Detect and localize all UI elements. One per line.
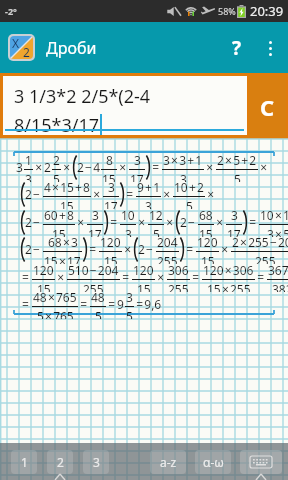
staticText: 58%: [218, 5, 236, 17]
staticText: ×: [156, 269, 166, 285]
button[interactable]: More options: [255, 26, 285, 70]
staticText: 68 × 3: [48, 234, 78, 250]
staticText: 48: [91, 289, 105, 305]
staticText: 4 × 15 + 8: [44, 179, 90, 195]
staticText: 17: [104, 198, 118, 209]
staticText: 5: [53, 171, 60, 182]
staticText: 15 × 17: [44, 253, 81, 264]
staticText: =: [256, 269, 266, 285]
staticText: Дроби: [46, 37, 97, 59]
staticText: 2 −: [25, 186, 42, 202]
staticText: 10 × 12: [260, 207, 288, 223]
staticText: 15: [201, 253, 215, 264]
button[interactable]: C: [249, 76, 286, 137]
staticText: 3: [180, 171, 187, 182]
staticText: 3825: [272, 281, 288, 292]
button[interactable]: 2: [47, 450, 73, 474]
staticText: ×: [137, 214, 147, 230]
staticText: 12: [149, 207, 163, 223]
staticText: 2: [23, 44, 30, 59]
staticText: 120: [33, 262, 54, 278]
button[interactable]: Keyboard: [240, 450, 282, 474]
staticText: 3 × 3 + 1: [163, 152, 203, 168]
staticText: 3: [126, 289, 133, 305]
staticText: 68: [199, 207, 213, 223]
staticText: 255: [255, 253, 276, 264]
staticText: 10: [121, 207, 135, 223]
staticText: ×: [118, 159, 128, 175]
staticText: 120: [133, 262, 154, 278]
staticText: 17: [227, 226, 241, 237]
staticText: 5: [126, 308, 133, 319]
staticText: 2: [44, 159, 51, 175]
staticText: 3: [231, 207, 238, 223]
staticText: 3: [108, 179, 115, 195]
staticText: 5: [153, 226, 160, 237]
staticText: 3 × 5: [267, 226, 288, 237]
staticText: 5 × 765: [37, 308, 74, 319]
staticText: 5: [186, 198, 193, 209]
staticText: 48 × 765: [33, 289, 77, 305]
staticText: =: [22, 269, 31, 285]
staticText: ×: [259, 159, 269, 175]
staticText: -2°: [5, 5, 17, 17]
staticText: 15: [104, 253, 118, 264]
staticText: =: [22, 296, 31, 312]
staticText: ×: [92, 186, 102, 202]
staticText: 2 −: [25, 241, 42, 257]
staticText: ×: [76, 214, 86, 230]
staticText: =: [191, 269, 201, 285]
staticText: =: [109, 214, 119, 230]
staticText: =: [151, 159, 161, 175]
staticText: 120: [100, 234, 121, 250]
staticText: =: [88, 241, 98, 257]
button[interactable]: Help: [219, 26, 255, 70]
staticText: =: [185, 241, 195, 257]
staticText: 3: [93, 454, 100, 470]
staticText: 9 + 1: [137, 179, 160, 195]
staticText: 5: [234, 171, 241, 182]
staticText: 510 − 204: [68, 262, 119, 278]
staticText: ×: [34, 159, 44, 175]
staticText: ×: [162, 186, 172, 202]
button[interactable]: 3: [83, 450, 109, 474]
staticText: 2: [57, 454, 64, 470]
staticText: 15: [52, 226, 66, 237]
button[interactable]: a-z: [150, 450, 186, 474]
staticText: 20:39: [250, 2, 284, 20]
staticText: C: [260, 92, 275, 122]
staticText: = 9,6: [135, 296, 162, 312]
staticText: 255: [83, 281, 104, 292]
staticText: 120: [197, 234, 218, 250]
staticText: =: [121, 269, 131, 285]
staticText: =: [79, 296, 89, 312]
staticText: ×: [205, 159, 215, 175]
staticText: 3: [16, 159, 23, 175]
staticText: ×: [123, 241, 133, 257]
staticText: 1: [21, 454, 28, 470]
staticText: 204: [157, 234, 178, 250]
staticText: 306: [168, 262, 189, 278]
staticText: 17: [88, 226, 102, 237]
staticText: 15: [199, 226, 213, 237]
staticText: 15 × 255: [207, 281, 251, 292]
staticText: 9: [117, 296, 124, 312]
staticText: 3 1/3*2 2/5*(2-4: [14, 84, 151, 109]
staticText: 255: [168, 281, 189, 292]
staticText: 2 × 5 + 2: [217, 152, 257, 168]
staticText: =: [248, 214, 258, 230]
staticText: 255: [157, 253, 178, 264]
staticText: =: [107, 296, 117, 312]
staticText: 2 − 4: [77, 159, 100, 175]
button[interactable]: 1: [11, 450, 37, 474]
staticText: 36720: [268, 262, 288, 278]
staticText: α-ω: [203, 454, 224, 470]
staticText: X: [12, 36, 20, 51]
staticText: ×: [206, 186, 216, 202]
staticText: 8/15*3/17: [14, 113, 100, 135]
button[interactable]: α-ω: [195, 450, 231, 474]
staticText: 10 + 2: [174, 179, 204, 195]
staticText: 3: [92, 207, 99, 223]
staticText: 17: [130, 171, 144, 182]
staticText: 3: [125, 226, 132, 237]
